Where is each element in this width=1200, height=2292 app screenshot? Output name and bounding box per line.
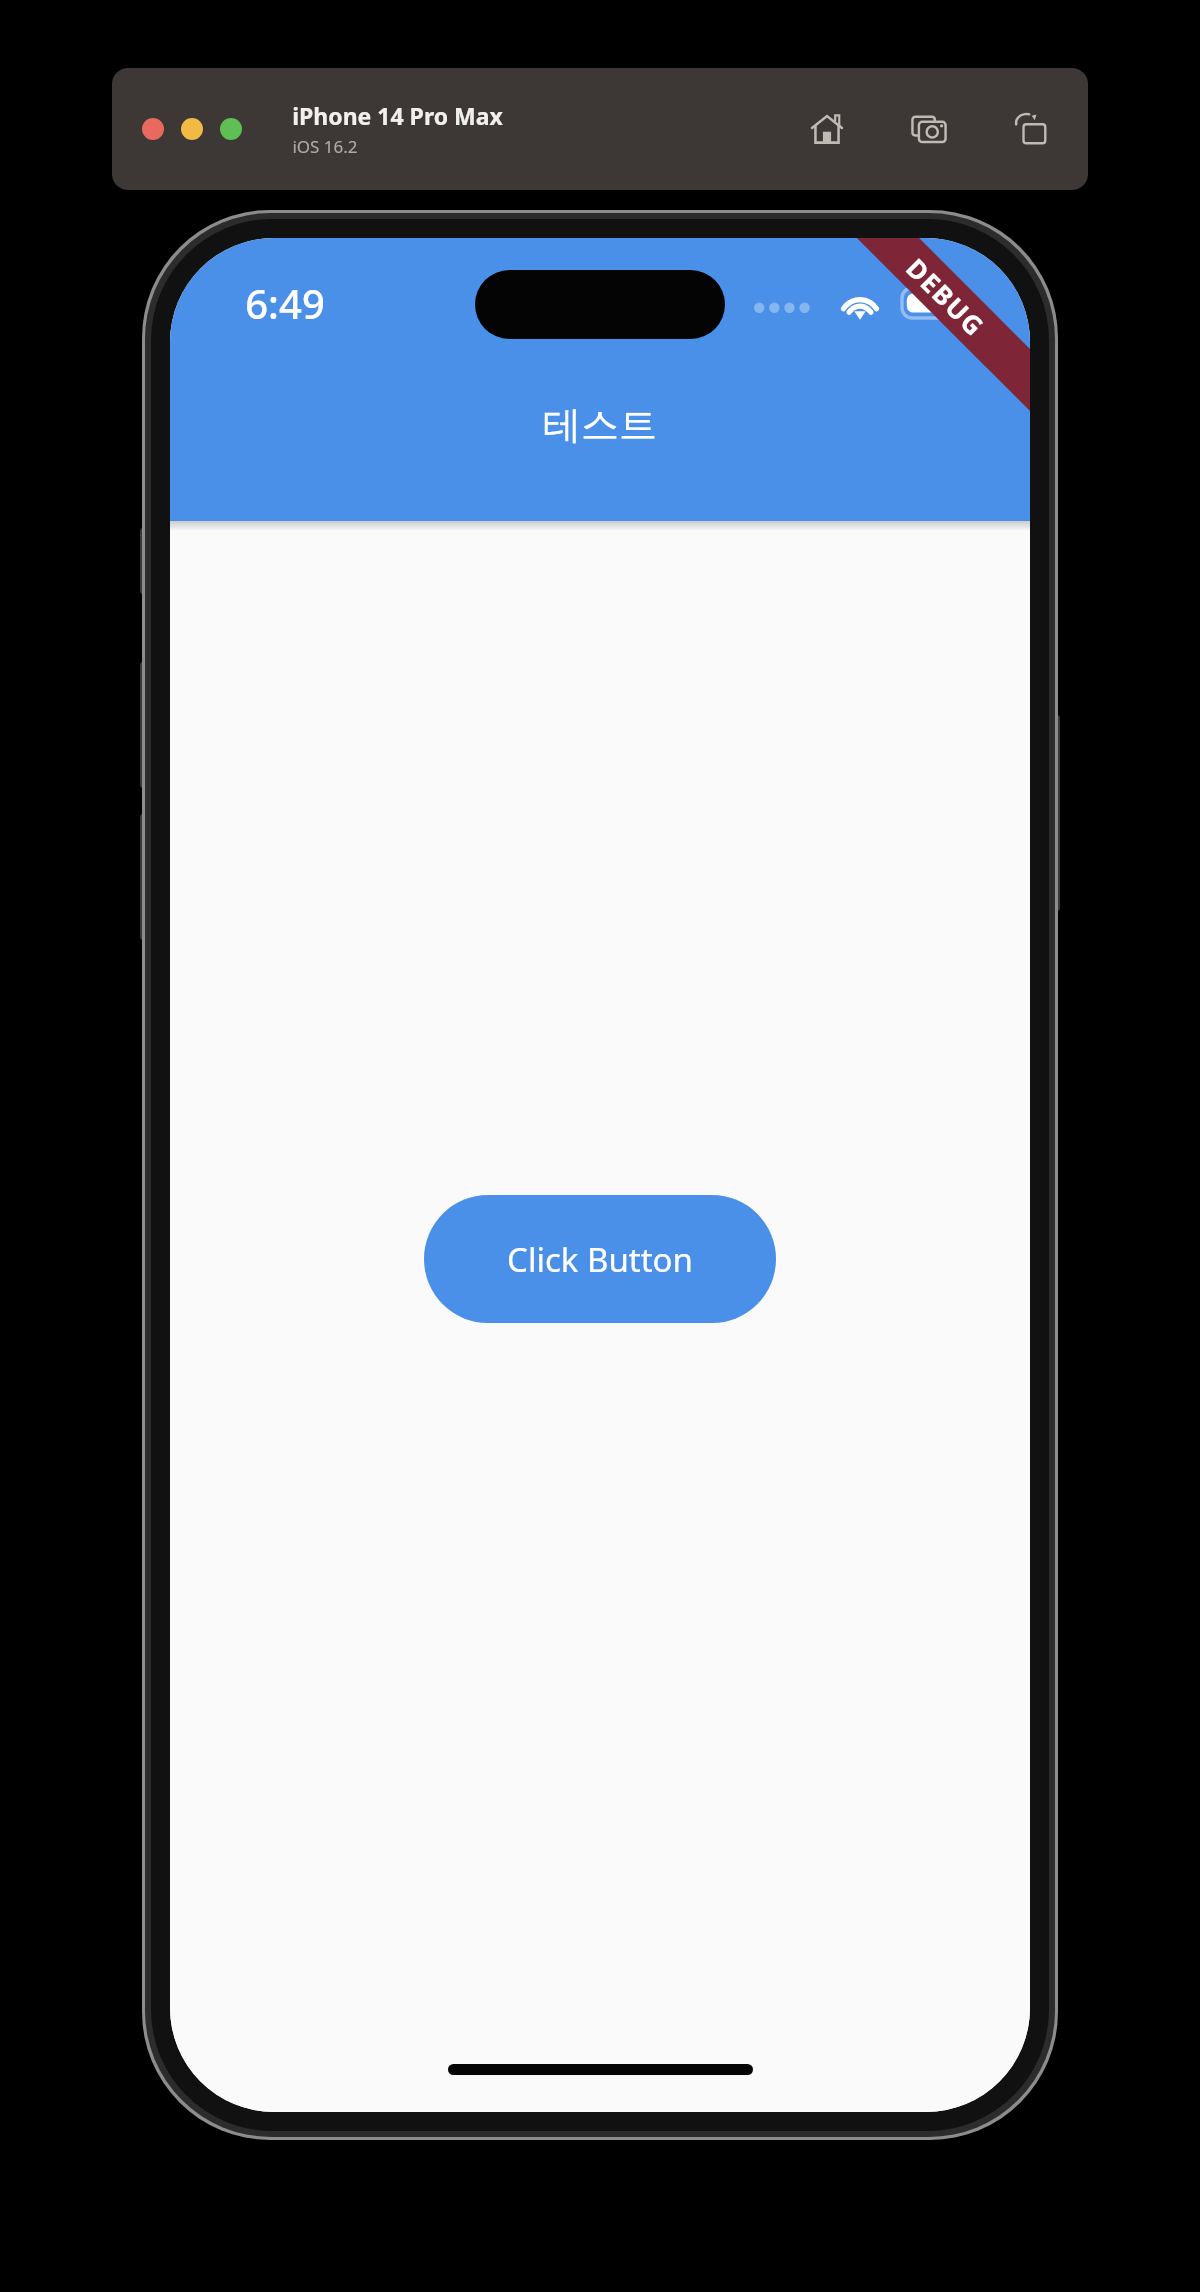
staticText: DEBUG	[899, 250, 993, 343]
button[interactable]	[181, 118, 203, 140]
staticText: 6:49	[245, 276, 325, 330]
staticText: iOS 16.2	[292, 135, 358, 158]
staticText: iPhone 14 Pro Max	[292, 100, 503, 131]
button[interactable]: Rotate	[1008, 106, 1054, 152]
button[interactable]	[220, 118, 242, 140]
button[interactable]: Home	[804, 106, 850, 152]
button[interactable]: Click Button	[424, 1195, 776, 1323]
button[interactable]: Screenshot	[906, 106, 952, 152]
staticText: 테스트	[543, 401, 657, 449]
button[interactable]	[142, 118, 164, 140]
staticText: Click Button	[507, 1237, 693, 1282]
